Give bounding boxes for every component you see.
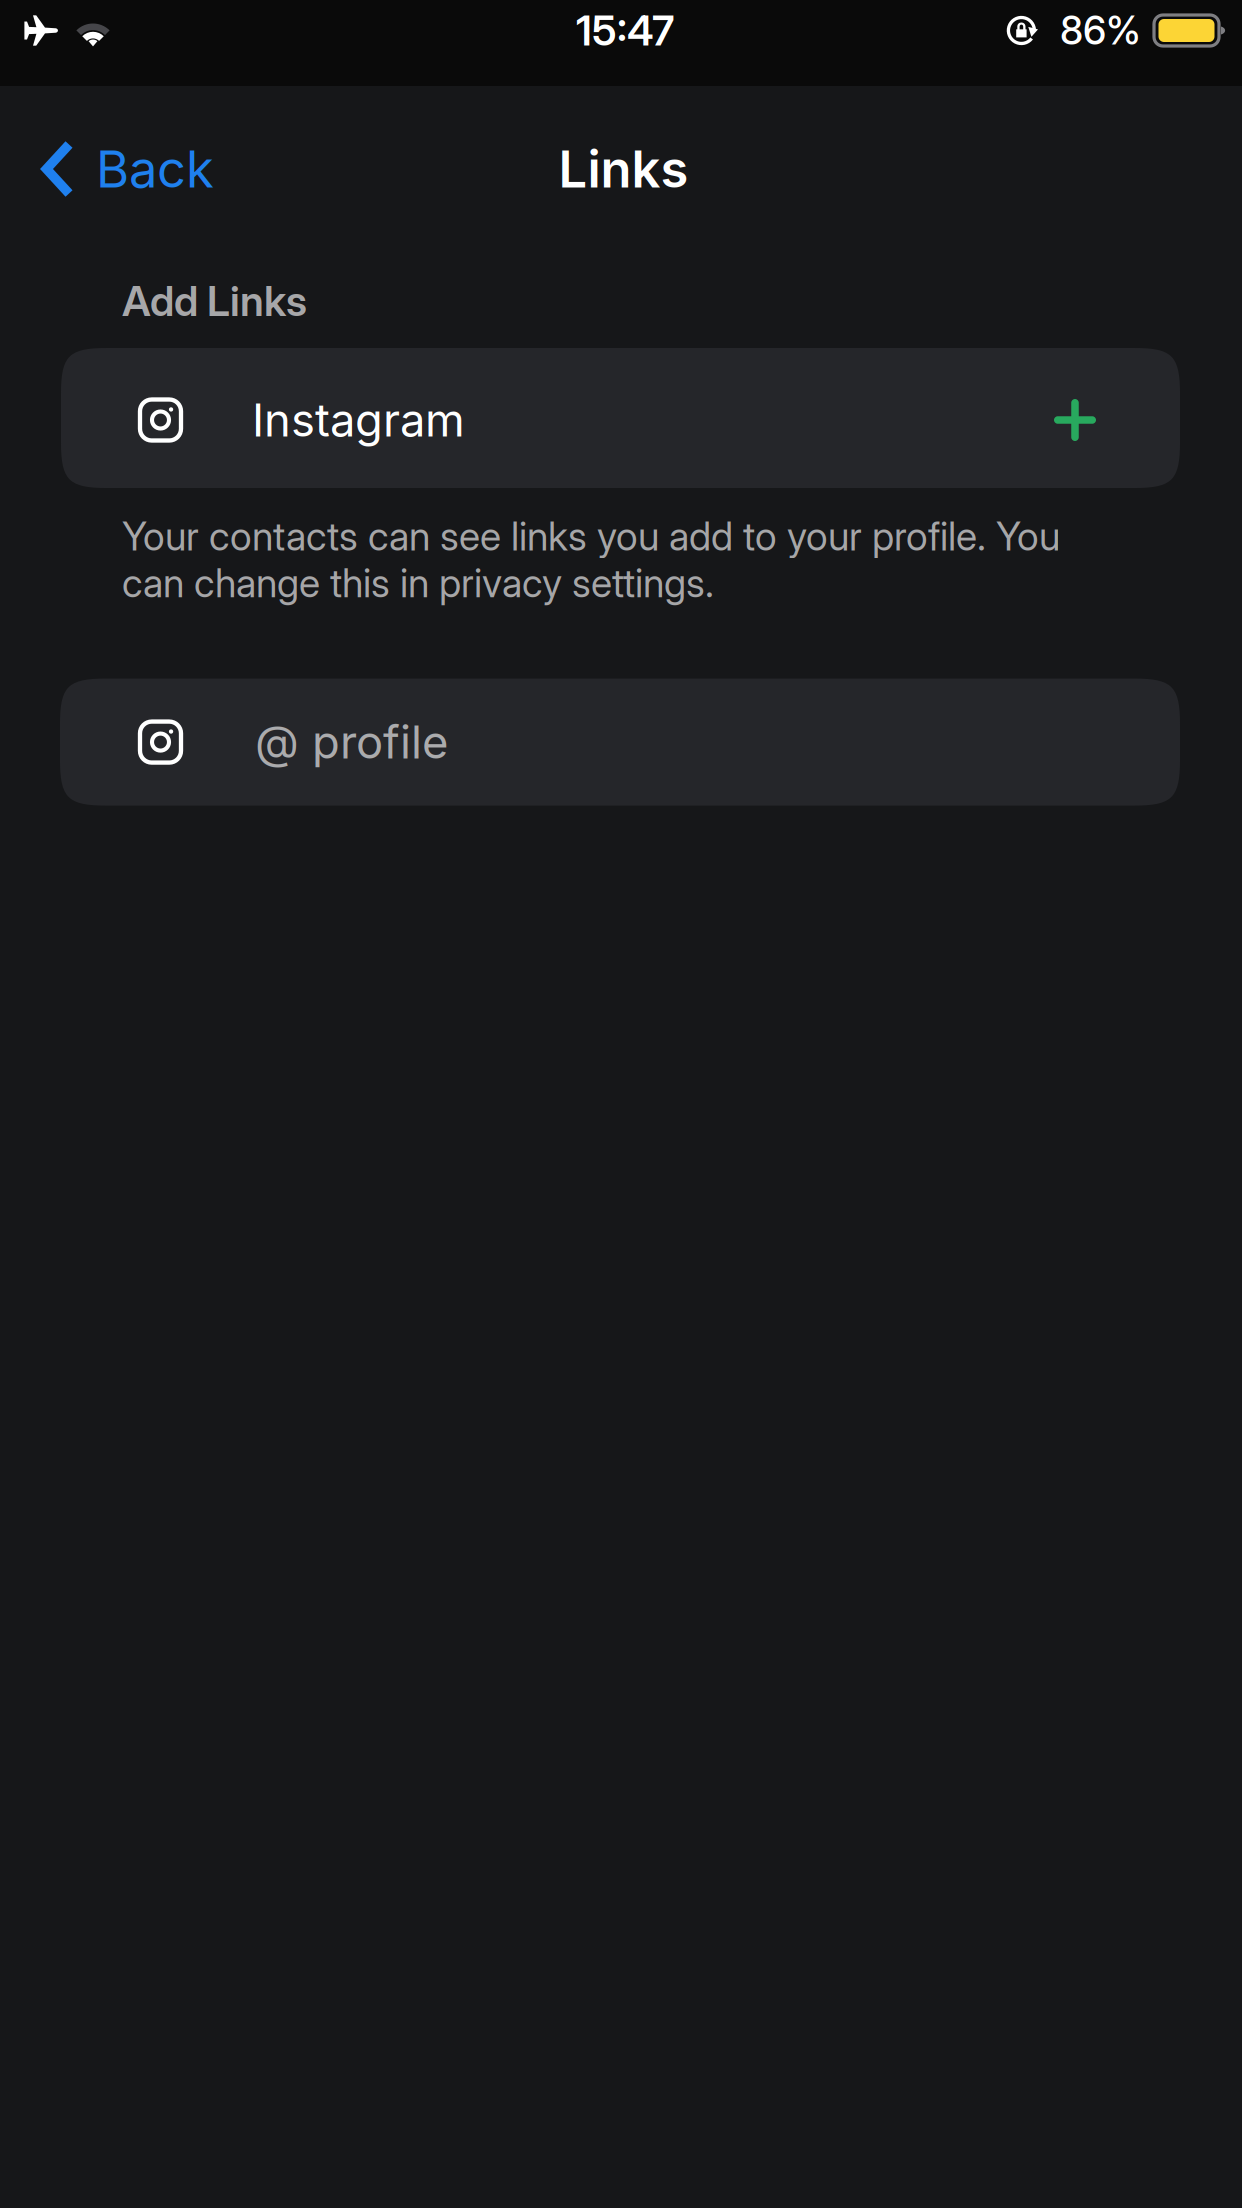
staticText: Add Links <box>122 276 307 326</box>
button[interactable]: Back <box>0 116 238 222</box>
staticText: Links <box>558 138 688 200</box>
button[interactable]: @ profile <box>0 679 1180 806</box>
staticText: 15:47 <box>576 5 674 55</box>
button[interactable]: Instagram <box>0 348 1180 488</box>
staticText: Your contacts can see links you add to y… <box>122 513 1060 607</box>
staticText: 86% <box>1060 7 1141 54</box>
staticText: @ profile <box>255 715 448 770</box>
button[interactable]: Add Instagram link <box>1052 393 1180 443</box>
staticText: Instagram <box>252 393 465 447</box>
staticText: Back <box>96 138 214 200</box>
